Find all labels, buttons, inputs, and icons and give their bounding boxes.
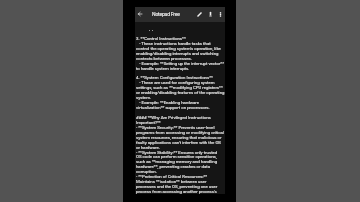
staticText: contexts between processes. xyxy=(136,56,192,61)
staticText: - **System Security:** Prevents user-lev… xyxy=(136,125,215,130)
staticText: OS code can perform sensitive operations… xyxy=(136,154,217,159)
staticText: process from accessing another process's xyxy=(136,189,217,194)
staticText: system resources, ensuring that maliciou… xyxy=(136,135,222,140)
button[interactable]: Back xyxy=(135,9,145,19)
staticText: Maintains **isolation** between user xyxy=(136,179,207,184)
staticText: or hardware. xyxy=(136,145,160,150)
staticText: control the operating system's operation… xyxy=(136,46,221,51)
staticText: settings, such as **modifying CPU regist… xyxy=(136,85,223,90)
staticText: programs from accessing or modifying cri… xyxy=(136,130,225,135)
staticText: #### **Why Are Privileged Instructions xyxy=(136,115,211,120)
button[interactable]: Edit xyxy=(194,9,204,19)
staticText: that happen outside the normal flow of xyxy=(136,30,210,31)
staticText: virtualization** support on processors. xyxy=(136,105,210,110)
staticText: hardware**, preventing crashes or data xyxy=(136,164,211,169)
staticText: - **Protection of Critical Resources:** xyxy=(136,174,208,179)
staticText: - These are used for configuring system xyxy=(136,80,215,85)
button[interactable]: More options xyxy=(215,9,225,19)
staticText: 4. **System Configuration Instructions** xyxy=(136,75,213,80)
staticText: 3. **Control Instructions** xyxy=(136,36,186,41)
staticText: or enabling/disabling features of the op… xyxy=(136,90,225,95)
staticText: Important?** xyxy=(136,120,161,125)
staticText: Notepad Free xyxy=(152,11,180,17)
staticText: - Example: **Setting up the interrupt ve… xyxy=(136,61,224,66)
staticText: - **System Stability:** Ensures only tru… xyxy=(136,150,218,155)
staticText: system. xyxy=(136,95,152,100)
button[interactable]: Notepad Free xyxy=(152,11,180,17)
button[interactable]: Voice input xyxy=(205,9,215,19)
staticText: enabling/disabling interrupts and switch… xyxy=(136,51,219,56)
staticText: faulty applications can't interfere with… xyxy=(136,140,221,145)
staticText: - These instructions handle tasks that xyxy=(136,41,211,46)
staticText: - Example: **Enabling hardware xyxy=(136,100,199,105)
staticText: corruption. xyxy=(136,169,157,174)
staticText: to handle system interrupts. xyxy=(136,66,190,71)
staticText: processes and the OS, preventing one use… xyxy=(136,184,218,189)
staticText: such as **managing memory and handling xyxy=(136,159,218,164)
